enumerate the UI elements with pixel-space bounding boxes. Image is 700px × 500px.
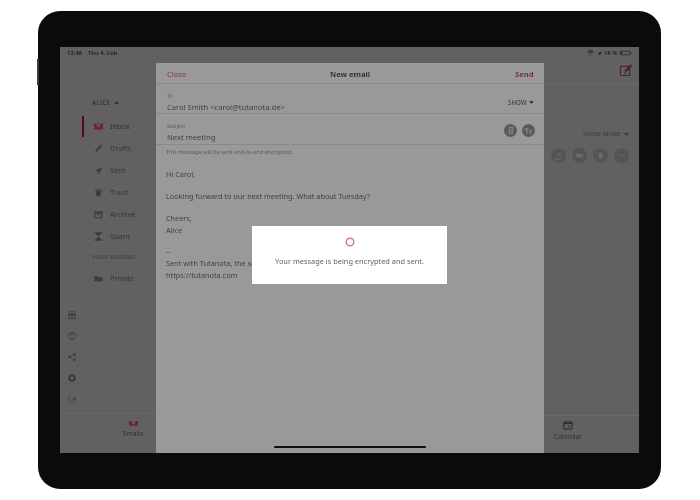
staticText: Your message is being encrypted and sent… bbox=[275, 256, 424, 266]
button[interactable]: Attach file bbox=[504, 124, 517, 137]
button[interactable]: Log out bbox=[66, 393, 78, 405]
button[interactable]: Formatting bbox=[522, 124, 535, 137]
staticText: Drafts bbox=[110, 143, 132, 153]
staticText: Sent with Tutanota, the secure, no-ads, … bbox=[166, 258, 367, 268]
staticText: SHOW MORE bbox=[583, 130, 621, 138]
button[interactable]: Emails bbox=[60, 414, 156, 453]
button[interactable]: SHOW bbox=[508, 98, 534, 106]
button[interactable]: New email bbox=[617, 61, 635, 79]
staticText: https://tutanota.com bbox=[166, 270, 238, 280]
button[interactable]: Invite friends bbox=[66, 351, 78, 363]
button[interactable]: Send bbox=[515, 69, 534, 79]
staticText: Subject bbox=[167, 122, 186, 129]
staticText: Archive bbox=[110, 209, 136, 219]
staticText: New email bbox=[330, 69, 371, 79]
staticText: Inbox bbox=[110, 121, 130, 131]
button[interactable]: ALICE bbox=[92, 98, 119, 106]
button[interactable]: Move bbox=[572, 148, 587, 163]
button[interactable]: Settings bbox=[66, 372, 78, 384]
staticText: Trash bbox=[110, 187, 129, 197]
staticText: 13:48 Thu 4. Feb bbox=[67, 49, 118, 57]
staticText: Carol Smith <carol@tutanota.de> bbox=[167, 102, 285, 112]
button[interactable]: Trash bbox=[60, 181, 156, 203]
staticText: -- bbox=[166, 246, 171, 256]
button[interactable]: Reply bbox=[551, 148, 566, 163]
button[interactable]: Private bbox=[60, 267, 156, 289]
button[interactable]: Spam bbox=[60, 225, 156, 247]
button[interactable]: Close bbox=[167, 69, 187, 79]
staticText: 18 % bbox=[604, 49, 618, 57]
staticText: YOUR FOLDERS bbox=[92, 253, 136, 261]
button[interactable]: Help bbox=[66, 330, 78, 342]
button[interactable]: Archive bbox=[60, 203, 156, 225]
button[interactable]: More bbox=[614, 148, 629, 163]
staticText: Private bbox=[110, 273, 135, 283]
button[interactable]: Premium bbox=[66, 309, 78, 321]
staticText: Sent bbox=[110, 165, 126, 175]
staticText: Cheers, bbox=[166, 213, 192, 223]
staticText: To bbox=[167, 92, 173, 99]
staticText: ALICE bbox=[92, 98, 111, 106]
staticText: This message will be sent end-to-end enc… bbox=[166, 148, 293, 156]
staticText: Calendar bbox=[554, 432, 582, 441]
staticText: Looking forward to our next meeting. Wha… bbox=[166, 191, 370, 201]
button[interactable]: SHOW MORE bbox=[544, 130, 629, 138]
button[interactable]: Calendar bbox=[544, 416, 639, 453]
staticText: SHOW bbox=[508, 98, 527, 106]
button[interactable]: Inbox bbox=[60, 115, 156, 137]
staticText: Alice bbox=[166, 225, 183, 235]
button[interactable]: Sent bbox=[60, 159, 156, 181]
button[interactable]: Delete bbox=[593, 148, 608, 163]
staticText: Next meeting bbox=[167, 132, 216, 142]
staticText: Hi Carol, bbox=[166, 169, 196, 179]
staticText: Spam bbox=[110, 231, 130, 241]
staticText: Emails bbox=[123, 429, 144, 438]
button[interactable]: Drafts bbox=[60, 137, 156, 159]
